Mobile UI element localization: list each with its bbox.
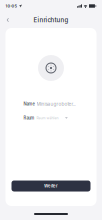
staticText: Raum wählen [36, 116, 58, 120]
button[interactable]: Back [0, 14, 15, 26]
staticText: Name [23, 101, 34, 106]
staticText: 10:05 [5, 4, 17, 8]
staticText: Weiter [44, 183, 58, 189]
staticText: Minisaugroboter... [36, 101, 75, 107]
staticText: Raum [23, 115, 34, 120]
staticText: Einrichtung [33, 16, 68, 24]
button[interactable]: Weiter [11, 180, 90, 191]
